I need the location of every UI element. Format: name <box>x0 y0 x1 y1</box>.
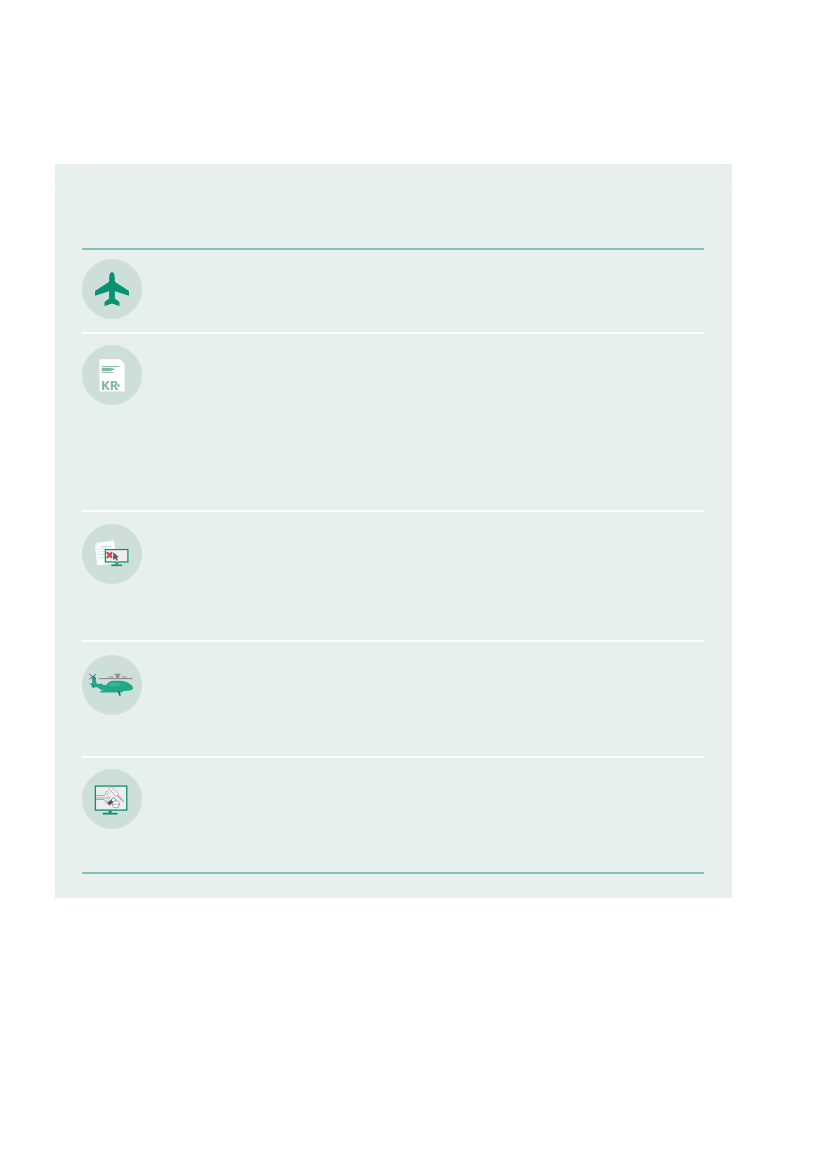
button[interactable]: Invoices <box>55 334 732 510</box>
button[interactable]: Helicopters <box>55 642 732 756</box>
button[interactable]: System tools <box>55 758 732 872</box>
button[interactable]: Error reports <box>55 512 732 640</box>
button[interactable]: Flights <box>55 250 732 332</box>
staticText: KR <box>101 376 119 394</box>
staticText: • <box>117 380 121 391</box>
